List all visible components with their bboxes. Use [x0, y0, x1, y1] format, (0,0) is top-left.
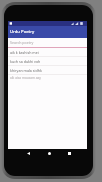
staticText: aik k kashish mei [10, 50, 39, 55]
button[interactable]: Urdu Poetry [8, 26, 87, 38]
staticText: khiryan mala sidhk [10, 68, 42, 73]
button[interactable]: Home [48, 152, 51, 155]
button[interactable]: kuch sa dukhi voh [8, 57, 87, 66]
button[interactable]: Back [27, 152, 30, 155]
staticText: kuch sa dukhi voh [10, 59, 41, 64]
staticText: Urdu Poetry [10, 29, 35, 35]
button[interactable]: Search poetry [8, 38, 87, 48]
staticText: aik aisa mausam aay [10, 76, 41, 80]
button[interactable]: aik k kashish mei [8, 48, 87, 57]
button[interactable]: khiryan mala sidhk [8, 66, 87, 75]
staticText: Search poetry [10, 40, 34, 45]
